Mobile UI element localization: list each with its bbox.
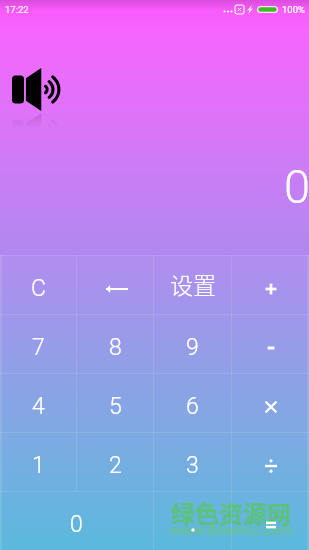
button[interactable]: Settings bbox=[154, 255, 231, 314]
staticText: 0 bbox=[284, 159, 309, 214]
staticText: 设置 bbox=[170, 267, 216, 300]
button[interactable]: Decimal point bbox=[154, 491, 231, 550]
staticText: 2 bbox=[109, 452, 122, 479]
button[interactable]: Divide bbox=[232, 432, 309, 491]
staticText: 5 bbox=[109, 393, 122, 420]
staticText: www.downcc.com bbox=[170, 521, 293, 539]
button[interactable]: Backspace bbox=[77, 255, 153, 314]
staticText: 0 bbox=[70, 511, 83, 538]
button[interactable]: 1 bbox=[0, 432, 76, 491]
staticText: 绿色资源网 bbox=[171, 495, 291, 530]
button[interactable]: Plus bbox=[232, 255, 309, 314]
staticText: 100% bbox=[282, 4, 305, 15]
button[interactable]: 2 bbox=[77, 432, 153, 491]
button[interactable]: Clear bbox=[0, 255, 76, 314]
button[interactable]: Multiply bbox=[232, 373, 309, 432]
staticText: 8 bbox=[109, 334, 122, 361]
button[interactable]: 7 bbox=[0, 314, 76, 373]
button[interactable]: 4 bbox=[0, 373, 76, 432]
button[interactable]: 0 bbox=[0, 491, 153, 550]
staticText: 9 bbox=[186, 334, 199, 361]
staticText: 1 bbox=[32, 452, 45, 479]
staticText: 6 bbox=[186, 393, 199, 420]
button[interactable]: 8 bbox=[77, 314, 153, 373]
button[interactable]: Minus bbox=[232, 314, 309, 373]
staticText: 17:22 bbox=[5, 4, 29, 15]
staticText: C bbox=[31, 275, 46, 302]
staticText: 3 bbox=[186, 452, 199, 479]
button[interactable]: Equals bbox=[232, 491, 309, 550]
button[interactable]: 6 bbox=[154, 373, 231, 432]
staticText: 7 bbox=[32, 334, 45, 361]
other: Volume bbox=[12, 68, 62, 140]
button[interactable]: 5 bbox=[77, 373, 153, 432]
button[interactable]: 3 bbox=[154, 432, 231, 491]
button[interactable]: 9 bbox=[154, 314, 231, 373]
staticText: 4 bbox=[32, 393, 45, 420]
